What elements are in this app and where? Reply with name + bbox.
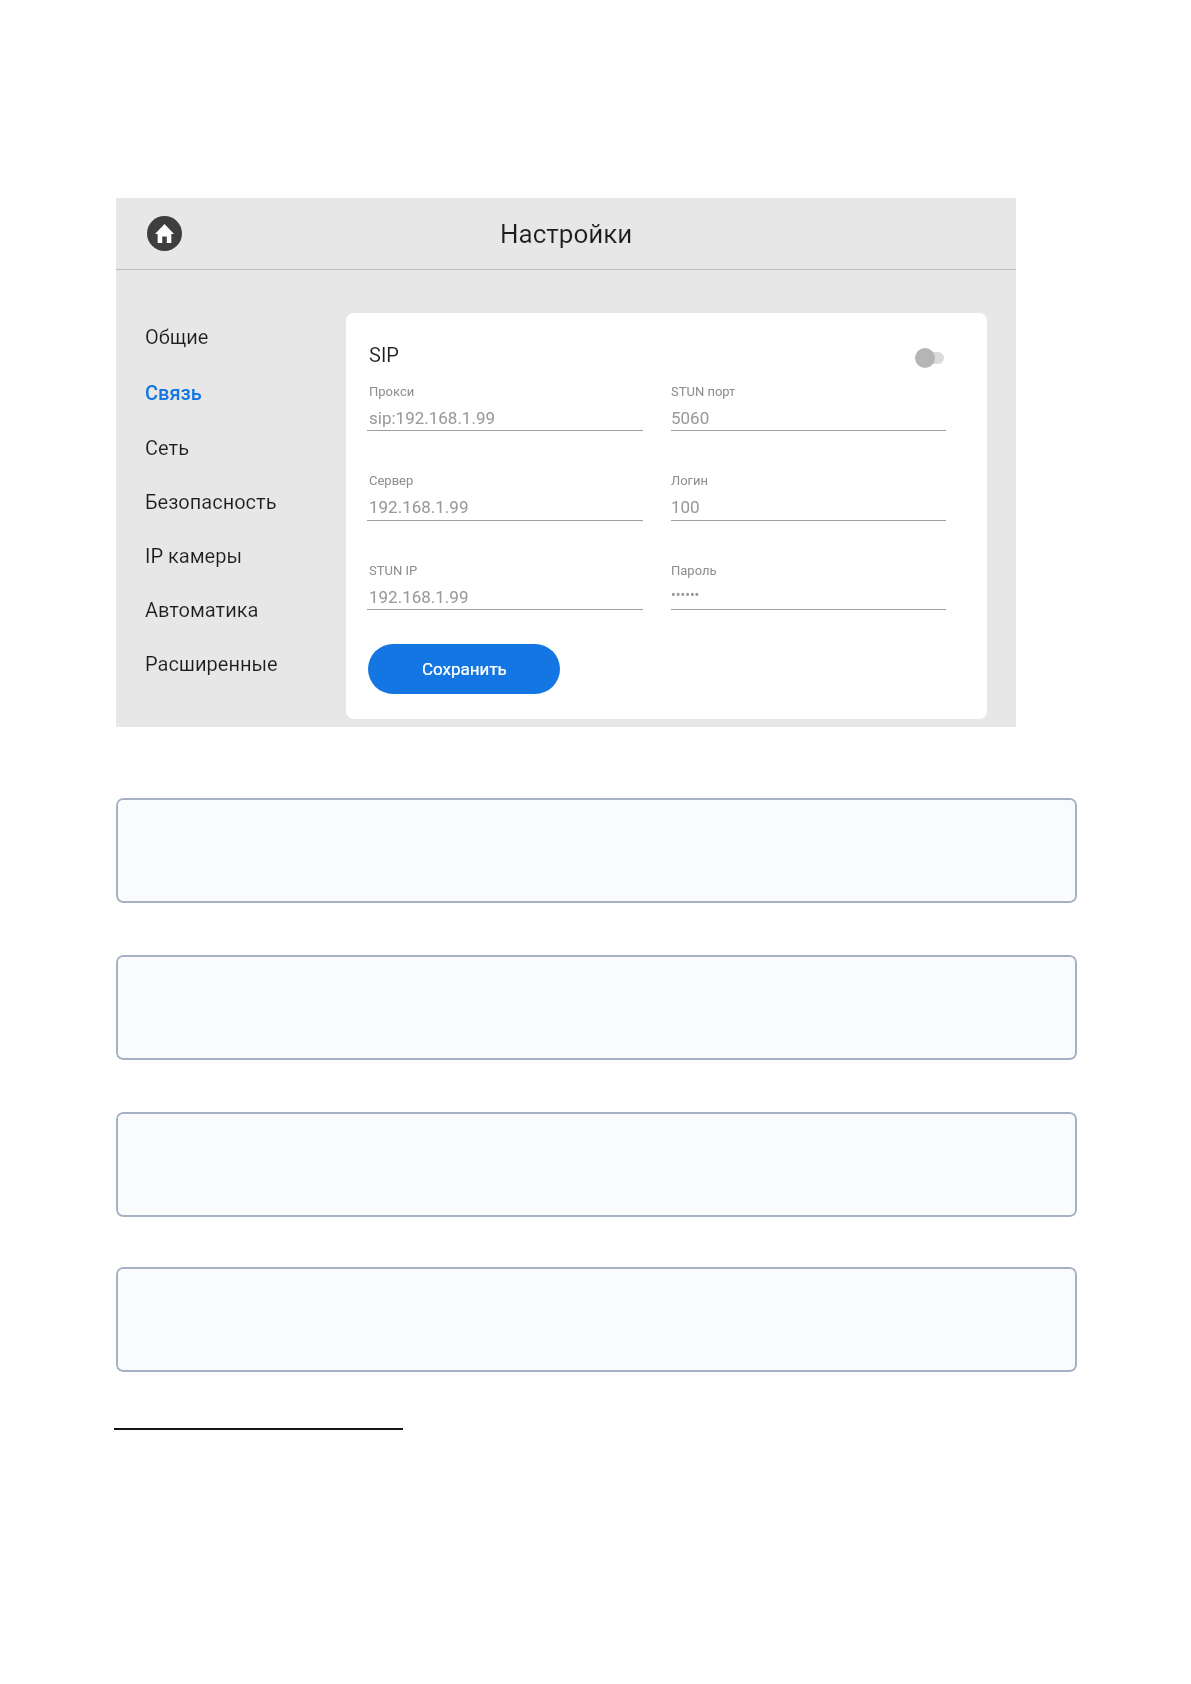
staticText: Безопасность [145, 490, 277, 513]
staticText: Прокси [369, 384, 415, 399]
button[interactable]: Сохранить [368, 644, 560, 694]
button[interactable]: Связь [145, 373, 202, 396]
button[interactable] [910, 343, 950, 373]
staticText: Сохранить [422, 659, 507, 679]
button[interactable]: Общие [145, 317, 209, 340]
button[interactable] [147, 216, 182, 251]
staticText: Расширенные [145, 652, 278, 675]
staticText: STUN IP [369, 563, 418, 578]
staticText: Сервер [369, 473, 414, 488]
staticText: Настройки [500, 219, 633, 249]
staticText: sip:192.168.1.99 [369, 408, 496, 428]
button[interactable]: Безопасность [145, 482, 277, 505]
staticText: Логин [671, 473, 709, 488]
staticText: 5060 [671, 408, 710, 428]
staticText: Общие [145, 325, 209, 348]
staticText: SIP [369, 343, 399, 366]
staticText: Пароль [671, 563, 717, 578]
staticText: 100 [671, 497, 700, 517]
button[interactable]: Сеть [145, 428, 189, 451]
staticText: 192.168.1.99 [369, 587, 469, 607]
button[interactable]: IP камеры [145, 536, 242, 559]
staticText: Связь [145, 381, 202, 404]
staticText: 192.168.1.99 [369, 497, 469, 517]
button[interactable]: Расширенные [145, 644, 278, 667]
button[interactable]: Автоматика [145, 590, 259, 613]
button[interactable] [116, 955, 1077, 1060]
staticText: Сеть [145, 436, 189, 459]
button[interactable] [116, 1267, 1077, 1372]
staticText: IP камеры [145, 544, 242, 567]
button[interactable] [116, 798, 1077, 903]
staticText: •••••• [671, 587, 700, 603]
staticText: Автоматика [145, 598, 259, 621]
button[interactable] [116, 1112, 1077, 1217]
staticText: STUN порт [671, 384, 736, 399]
